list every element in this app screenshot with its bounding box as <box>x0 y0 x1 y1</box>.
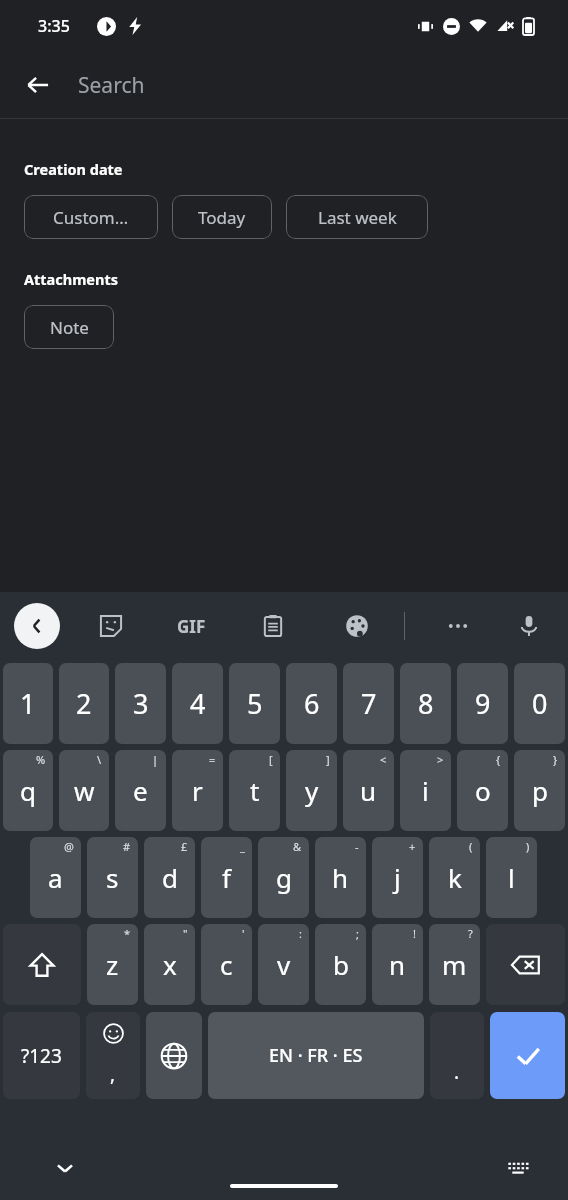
staticText: < <box>380 752 387 767</box>
staticText: w <box>74 773 95 808</box>
staticText: Today <box>198 206 246 229</box>
staticText: z <box>106 947 119 982</box>
button[interactable]: t <box>229 750 280 831</box>
staticText: b <box>333 947 349 982</box>
staticText: y <box>305 773 319 808</box>
staticText: a <box>48 860 63 895</box>
button[interactable]: i <box>400 750 451 831</box>
button[interactable]: Note <box>24 305 114 349</box>
button[interactable]: 1 <box>3 663 53 744</box>
button[interactable]: Theme <box>334 603 380 649</box>
button[interactable]: Shift <box>3 924 81 1005</box>
staticText: 2 <box>76 685 92 722</box>
staticText: % <box>36 752 46 767</box>
staticText: GIF <box>177 615 206 638</box>
staticText: f <box>222 860 231 895</box>
button[interactable]: Clipboard <box>250 603 296 649</box>
button[interactable]: Custom… <box>24 195 158 239</box>
staticText: ' <box>242 926 245 941</box>
button[interactable]: c <box>201 924 252 1005</box>
button[interactable]: y <box>286 750 337 831</box>
button[interactable]: w <box>59 750 109 831</box>
button[interactable]: Voice input <box>506 603 552 649</box>
button[interactable]: 8 <box>400 663 451 744</box>
staticText: EN · FR · ES <box>269 1043 363 1068</box>
staticText: i <box>422 773 429 808</box>
button[interactable]: 6 <box>286 663 337 744</box>
staticText: n <box>389 947 406 982</box>
staticText: @ <box>64 839 74 854</box>
button[interactable]: GIF <box>168 603 214 649</box>
button[interactable]: 0 <box>514 663 565 744</box>
button[interactable]: 4 <box>172 663 223 744</box>
button[interactable]: p <box>514 750 565 831</box>
button[interactable]: m <box>429 924 480 1005</box>
button[interactable]: q <box>3 750 53 831</box>
button[interactable]: n <box>372 924 423 1005</box>
staticText: 3 <box>133 685 149 722</box>
button[interactable]: l <box>486 837 537 918</box>
staticText: q <box>20 773 36 808</box>
staticText: { <box>496 752 501 767</box>
button[interactable]: a <box>30 837 81 918</box>
button[interactable]: b <box>315 924 366 1005</box>
button[interactable]: Close toolbar <box>14 603 60 649</box>
button[interactable]: k <box>429 837 480 918</box>
staticText: Creation date <box>24 159 123 179</box>
button[interactable]: Today <box>172 195 272 239</box>
button[interactable]: Back <box>12 59 64 111</box>
button[interactable]: EN · FR · ES <box>208 1012 424 1099</box>
staticText: x <box>163 947 177 982</box>
staticText: , <box>110 1061 116 1087</box>
button[interactable]: 3 <box>115 663 166 744</box>
button[interactable]: Period <box>430 1012 484 1099</box>
button[interactable]: 2 <box>59 663 109 744</box>
button[interactable]: Switch keyboard <box>498 1148 538 1188</box>
button[interactable]: v <box>258 924 309 1005</box>
button[interactable]: d <box>144 837 195 918</box>
staticText: 4 <box>190 685 206 722</box>
button[interactable]: z <box>87 924 138 1005</box>
staticText: 8 <box>418 685 434 722</box>
button[interactable]: 7 <box>343 663 394 744</box>
staticText: ( <box>469 839 473 854</box>
button[interactable]: e <box>115 750 166 831</box>
staticText: Attachments <box>24 269 119 289</box>
button[interactable]: s <box>87 837 138 918</box>
button[interactable]: r <box>172 750 223 831</box>
button[interactable]: h <box>315 837 366 918</box>
staticText: } <box>553 752 558 767</box>
button[interactable]: 5 <box>229 663 280 744</box>
button[interactable]: u <box>343 750 394 831</box>
staticText: ; <box>356 926 359 941</box>
button[interactable]: Last week <box>286 195 428 239</box>
button[interactable]: Hide keyboard <box>44 1147 86 1189</box>
button[interactable]: x <box>144 924 195 1005</box>
button[interactable]: 9 <box>457 663 508 744</box>
button[interactable]: o <box>457 750 508 831</box>
staticText: * <box>124 926 131 941</box>
staticText: h <box>332 860 349 895</box>
button[interactable]: g <box>258 837 309 918</box>
button[interactable]: f <box>201 837 252 918</box>
button[interactable]: Backspace <box>486 924 565 1005</box>
staticText: 7 <box>361 685 377 722</box>
staticText: Search <box>78 71 145 100</box>
staticText: 6 <box>304 685 320 722</box>
staticText: > <box>437 752 444 767</box>
staticText: 0 <box>532 685 548 722</box>
button[interactable]: ?123 <box>3 1012 80 1099</box>
button[interactable]: Stickers <box>88 603 134 649</box>
staticText: \ <box>97 752 102 767</box>
button[interactable]: Done <box>490 1012 565 1099</box>
staticText: . <box>454 1059 460 1085</box>
staticText: o <box>475 773 491 808</box>
button[interactable]: Emoji and comma <box>86 1012 140 1099</box>
staticText: 1 <box>20 685 36 722</box>
staticText: Note <box>50 316 89 339</box>
button[interactable]: More options <box>435 603 481 649</box>
staticText: t <box>250 773 260 808</box>
staticText: - <box>355 839 359 854</box>
button[interactable]: Change language <box>146 1012 202 1099</box>
button[interactable]: j <box>372 837 423 918</box>
